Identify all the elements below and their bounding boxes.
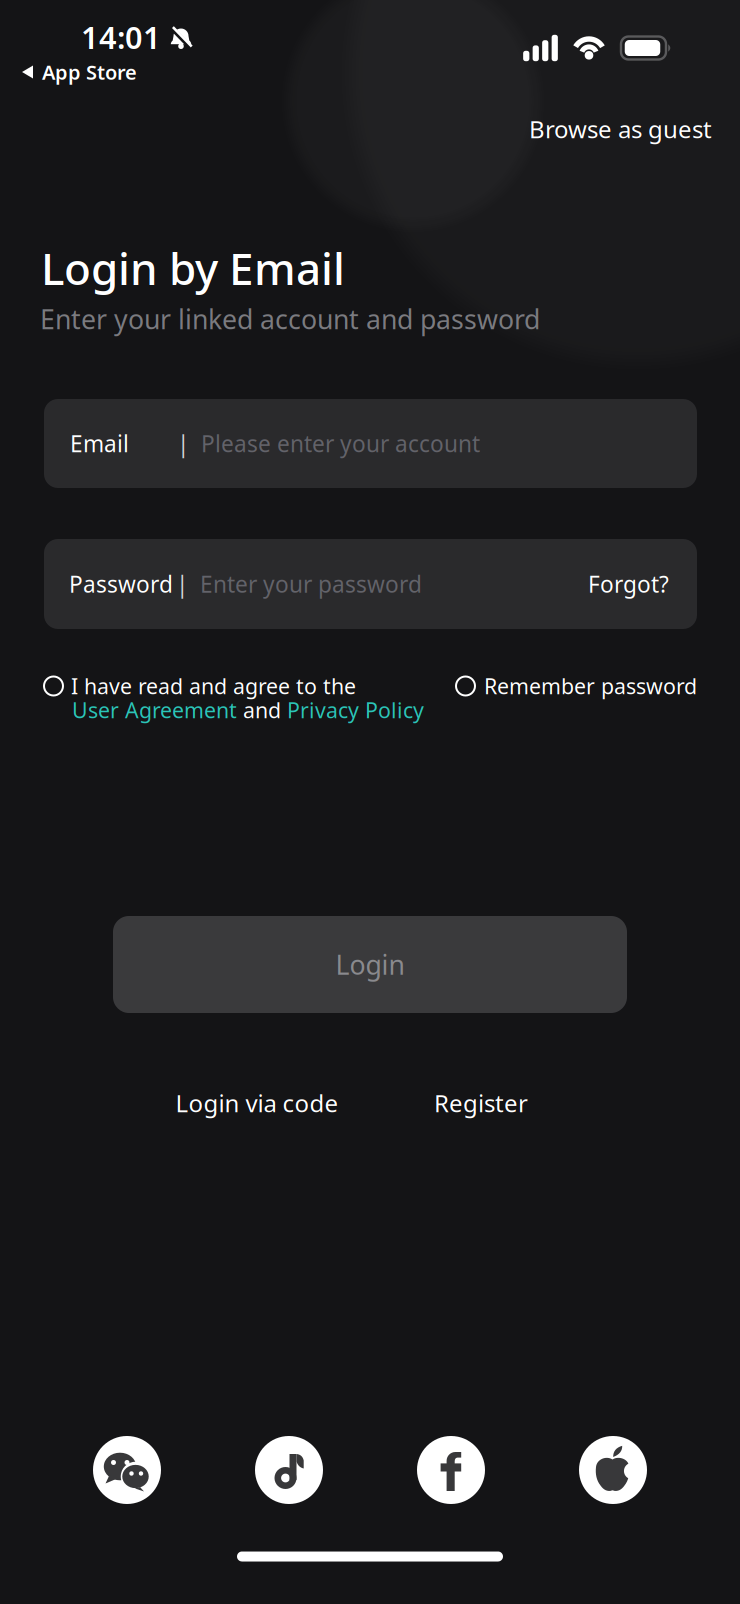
button[interactable]: Password [44, 539, 697, 629]
button[interactable]: Login via code [175, 1087, 338, 1119]
staticText: Login by Email [41, 239, 345, 297]
staticText: Enter your linked account and password [40, 301, 540, 337]
button[interactable] [93, 1436, 161, 1504]
button[interactable]: Remember password [456, 672, 697, 700]
button[interactable]: User Agreement [72, 696, 424, 724]
staticText: Register [434, 1087, 528, 1119]
staticText: I have read and agree to the [71, 672, 356, 700]
staticText: Browse as guest [529, 113, 712, 145]
staticText: Login via code [175, 1087, 338, 1119]
button[interactable]: App Store [22, 59, 137, 85]
staticText: | [177, 428, 189, 458]
staticText: User Agreement [72, 696, 237, 724]
button[interactable] [255, 1436, 323, 1504]
staticText: Remember password [484, 672, 697, 700]
staticText: App Store [42, 59, 137, 85]
staticText: 14:01 [81, 17, 161, 57]
button[interactable]: Login [113, 916, 627, 1013]
staticText: | [176, 569, 188, 599]
staticText: Please enter your account [201, 428, 480, 458]
staticText: Privacy Policy [287, 696, 424, 724]
staticText: Enter your password [200, 569, 422, 599]
staticText: Login [335, 947, 404, 982]
button[interactable]: Browse as guest [529, 113, 712, 145]
button[interactable] [417, 1436, 485, 1504]
button[interactable]: Email [44, 399, 697, 488]
staticText: and [237, 696, 287, 724]
staticText: Email [70, 428, 129, 458]
staticText: Forgot? [588, 569, 669, 599]
button[interactable]: I have read and agree to the [44, 672, 356, 700]
button[interactable] [579, 1436, 647, 1504]
staticText: Password [69, 569, 173, 599]
button[interactable]: Register [434, 1087, 528, 1119]
